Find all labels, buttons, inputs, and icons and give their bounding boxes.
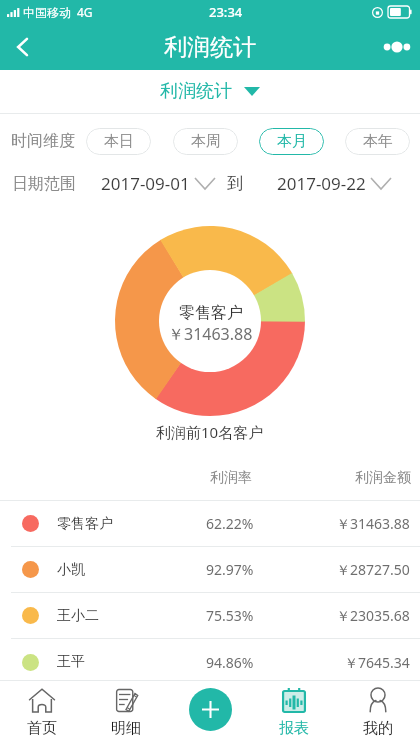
staticText: 小凯: [57, 561, 85, 579]
button[interactable]: 首页: [0, 680, 84, 747]
staticText: 利润统计: [160, 80, 232, 103]
staticText: 92.97%: [206, 560, 254, 579]
staticText: 首页: [27, 719, 57, 738]
staticText: 明细: [111, 719, 141, 738]
staticText: ￥7645.34: [344, 653, 410, 672]
button[interactable]: 王小二: [0, 593, 420, 639]
button[interactable]: 小凯: [0, 547, 420, 593]
button[interactable]: 2017-09-22: [277, 172, 391, 195]
staticText: 62.22%: [206, 514, 254, 533]
staticText: 4G: [77, 4, 93, 20]
button[interactable]: Back: [0, 24, 46, 70]
staticText: 利润前10名客户: [156, 422, 264, 442]
staticText: 2017-09-22: [277, 172, 366, 195]
staticText: 日期范围: [12, 174, 76, 194]
staticText: 本年: [363, 132, 393, 151]
staticText: 我的: [363, 719, 393, 738]
staticText: 零售客户: [57, 515, 113, 533]
staticText: 中国移动: [23, 5, 71, 20]
staticText: 王小二: [57, 607, 99, 625]
button[interactable]: Add: [189, 688, 232, 731]
staticText: 75.53%: [206, 606, 254, 625]
button[interactable]: 利润统计: [0, 70, 420, 113]
button[interactable]: 本日: [86, 128, 151, 155]
staticText: 本月: [277, 132, 307, 151]
button[interactable]: 2017-09-01: [101, 172, 215, 195]
staticText: 23:34: [209, 3, 243, 21]
staticText: 到: [227, 174, 243, 194]
button[interactable]: 零售客户: [0, 501, 420, 547]
staticText: 利润率: [210, 469, 252, 487]
button[interactable]: 王平: [0, 639, 420, 685]
staticText: ￥31463.88: [168, 323, 253, 345]
staticText: ￥28727.50: [336, 560, 410, 579]
button[interactable]: 我的: [336, 680, 420, 747]
staticText: 时间维度: [11, 131, 75, 151]
button[interactable]: 明细: [84, 680, 168, 747]
staticText: ￥23035.68: [336, 606, 410, 625]
staticText: 本周: [191, 132, 221, 151]
staticText: 本日: [104, 132, 134, 151]
staticText: 报表: [279, 719, 309, 738]
staticText: 零售客户: [179, 303, 243, 323]
button[interactable]: More options: [374, 24, 420, 70]
staticText: 王平: [57, 653, 85, 671]
staticText: 利润统计: [164, 33, 256, 62]
staticText: 94.86%: [206, 653, 254, 672]
button[interactable]: 本周: [173, 128, 238, 155]
button[interactable]: 本年: [345, 128, 410, 155]
button[interactable]: 本月: [259, 128, 324, 155]
staticText: 利润金额: [355, 469, 411, 487]
staticText: ￥31463.88: [336, 514, 410, 533]
staticText: 2017-09-01: [101, 172, 190, 195]
button[interactable]: 报表: [252, 680, 336, 747]
